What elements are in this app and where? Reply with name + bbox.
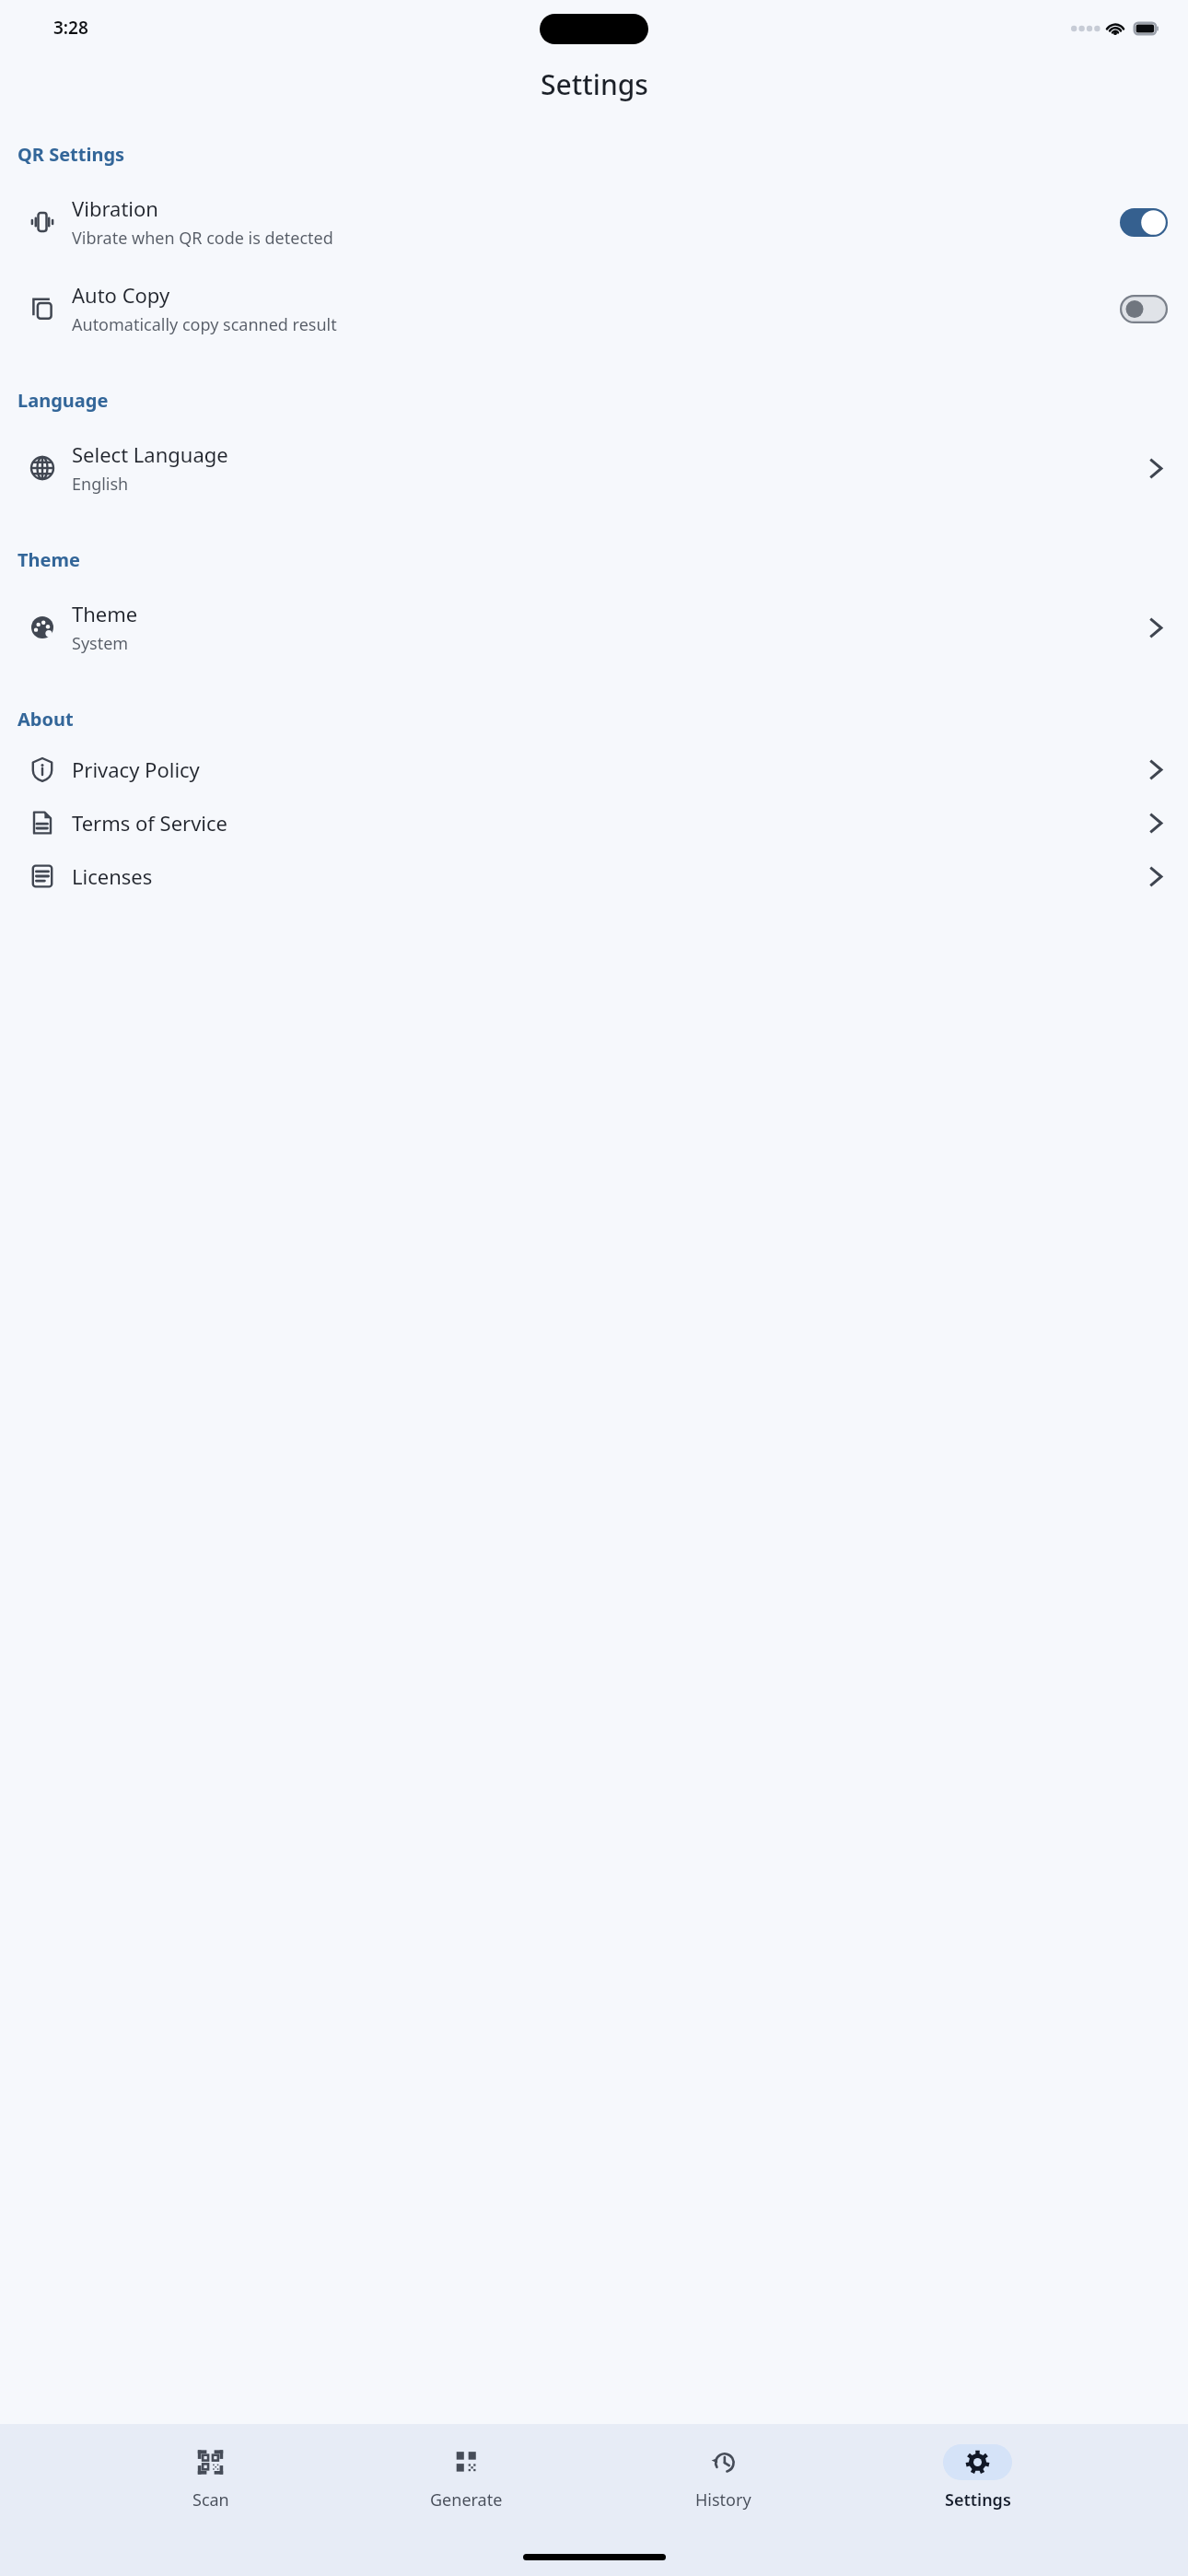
button[interactable]: Scan	[167, 2442, 254, 2513]
staticText: System	[72, 632, 129, 655]
staticText: English	[72, 473, 129, 496]
staticText: Automatically copy scanned result	[72, 313, 337, 336]
button[interactable]: Theme	[0, 596, 1188, 659]
staticText: History	[695, 2488, 751, 2512]
staticText: Auto Copy	[72, 281, 170, 309]
staticText: Theme	[72, 600, 138, 627]
button[interactable]: Generate	[421, 2442, 512, 2513]
staticText: Language	[17, 388, 109, 413]
staticText: Privacy Policy	[72, 755, 200, 783]
button[interactable]: Toggle off	[1120, 295, 1168, 323]
staticText: Select Language	[72, 440, 228, 468]
button[interactable]: Terms of Service	[0, 805, 1188, 840]
staticText: Licenses	[72, 862, 153, 890]
staticText: About	[17, 707, 74, 732]
staticText: Settings	[945, 2488, 1011, 2512]
button[interactable]: Licenses	[0, 859, 1188, 894]
staticText: Scan	[192, 2488, 229, 2512]
staticText: Vibrate when QR code is detected	[72, 227, 333, 250]
other: Settings	[965, 2450, 990, 2475]
button[interactable]: Select Language	[0, 437, 1188, 499]
staticText: Terms of Service	[72, 809, 228, 837]
button[interactable]: Settings	[934, 2442, 1021, 2513]
button[interactable]: Auto Copy	[0, 277, 1188, 340]
staticText: Vibration	[72, 194, 158, 222]
staticText: Settings	[541, 65, 648, 103]
button[interactable]: Privacy Policy	[0, 752, 1188, 787]
staticText: QR Settings	[17, 142, 125, 167]
staticText: 3:28	[53, 16, 88, 40]
staticText: Generate	[430, 2488, 503, 2512]
button[interactable]: Toggle on	[1120, 208, 1168, 237]
staticText: Theme	[17, 547, 80, 572]
button[interactable]: Vibration	[0, 191, 1188, 253]
button[interactable]: History	[680, 2442, 767, 2513]
